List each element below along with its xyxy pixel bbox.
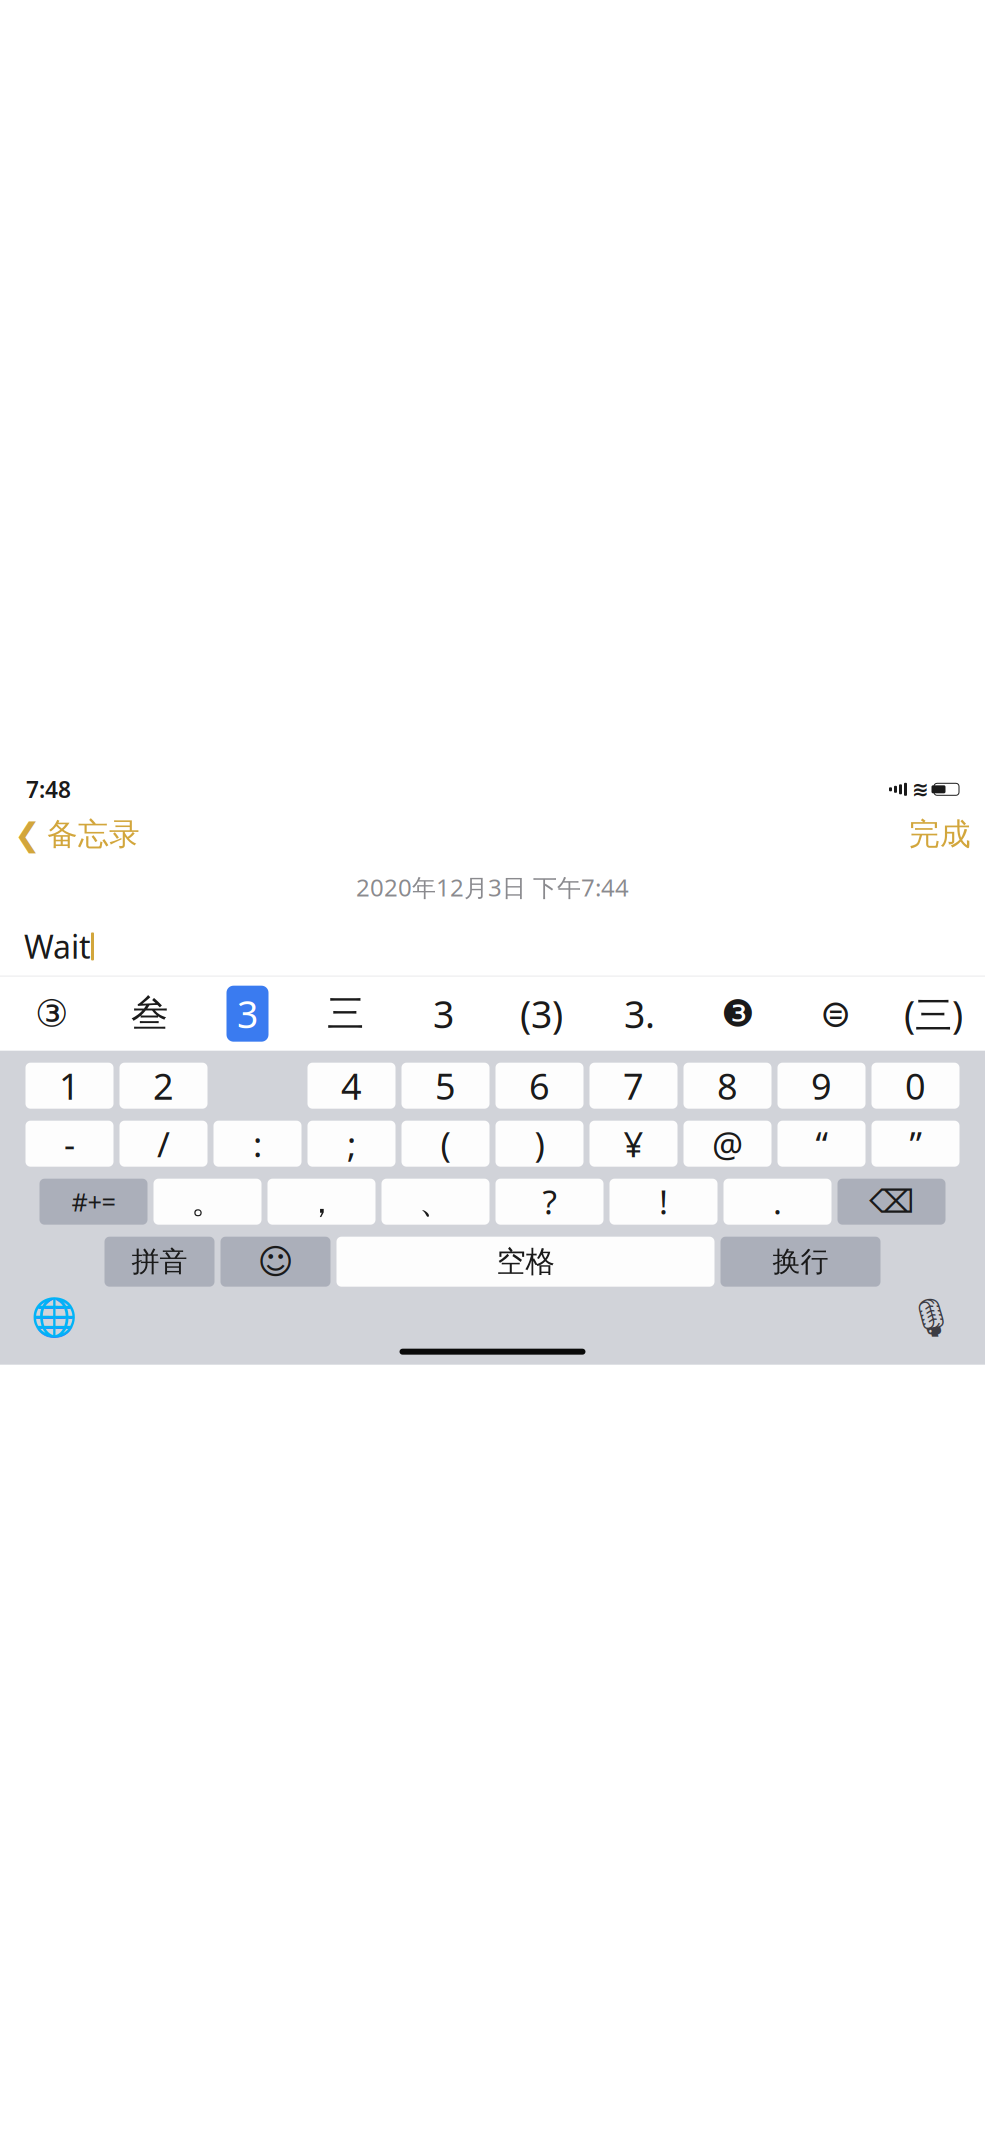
button[interactable]: ?	[495, 1179, 603, 1225]
button[interactable]: 0	[871, 1063, 959, 1109]
button[interactable]: Candidate ③	[2, 977, 100, 1051]
staticText: 🎙	[907, 1296, 954, 1339]
staticText: ≋	[912, 778, 929, 801]
staticText: @	[712, 1121, 743, 1167]
button[interactable]: 。	[153, 1179, 261, 1225]
button[interactable]: “	[777, 1121, 865, 1167]
staticText: :	[253, 1121, 262, 1167]
button[interactable]: :	[213, 1121, 301, 1167]
staticText: -	[64, 1121, 75, 1167]
staticText: 拼音	[131, 1244, 187, 1279]
button[interactable]: /	[119, 1121, 207, 1167]
staticText: )	[534, 1121, 544, 1167]
button[interactable]: More symbols	[39, 1179, 147, 1225]
staticText: 2020年12月3日 下午7:44	[356, 871, 629, 903]
button[interactable]: 6	[495, 1063, 583, 1109]
staticText: 2	[153, 1062, 174, 1110]
staticText: 8	[717, 1062, 738, 1110]
staticText: (3)	[520, 989, 563, 1038]
button[interactable]: Emoji	[220, 1237, 330, 1287]
staticText: 3	[433, 989, 454, 1038]
button[interactable]: @	[683, 1121, 771, 1167]
button[interactable]: .	[723, 1179, 831, 1225]
staticText: 3.	[624, 989, 655, 1038]
staticText: ❮	[14, 816, 41, 852]
staticText: “	[815, 1121, 827, 1167]
staticText: 1	[59, 1062, 80, 1110]
staticText: 7:48	[26, 774, 71, 804]
staticText: 。	[191, 1181, 224, 1222]
button[interactable]: Candidate (3)	[492, 977, 590, 1051]
staticText: ☺	[257, 1242, 293, 1281]
button[interactable]: Switch keyboard	[24, 1293, 84, 1343]
staticText: 🌐	[31, 1296, 77, 1339]
button[interactable]: 完成	[909, 809, 971, 859]
button[interactable]: ，	[267, 1179, 375, 1225]
button[interactable]: Return	[720, 1237, 880, 1287]
staticText: 4	[341, 1062, 362, 1110]
staticText: 9	[811, 1062, 832, 1110]
button[interactable]: )	[495, 1121, 583, 1167]
staticText: /	[157, 1121, 170, 1167]
button[interactable]: 1	[25, 1063, 113, 1109]
staticText: 3	[237, 989, 258, 1038]
staticText: 备忘录	[47, 815, 140, 853]
button[interactable]: 2	[119, 1063, 207, 1109]
staticText: ;	[347, 1121, 356, 1167]
staticText: ”	[909, 1121, 921, 1167]
button[interactable]: !	[609, 1179, 717, 1225]
button[interactable]: 、	[381, 1179, 489, 1225]
button[interactable]: (	[401, 1121, 489, 1167]
button[interactable]: ;	[307, 1121, 395, 1167]
staticText: ❸	[721, 992, 754, 1035]
button[interactable]: Delete	[837, 1179, 945, 1225]
button[interactable]: 7	[589, 1063, 677, 1109]
button[interactable]: Candidate 3	[394, 977, 492, 1051]
button[interactable]: 5	[401, 1063, 489, 1109]
button[interactable]: ”	[871, 1121, 959, 1167]
button[interactable]: Candidate 三	[296, 977, 394, 1051]
button[interactable]: Pinyin keyboard	[104, 1237, 214, 1287]
staticText: 叁	[131, 991, 168, 1037]
button[interactable]: Candidate 3.	[590, 977, 688, 1051]
button[interactable]: Candidate ❸	[688, 977, 786, 1051]
staticText: 7	[623, 1062, 644, 1110]
staticText: ⊜	[820, 992, 851, 1035]
staticText: #+=	[71, 1185, 115, 1218]
staticText: 三	[327, 991, 364, 1037]
button[interactable]: Candidate (三)	[884, 977, 982, 1051]
button[interactable]: Dictation	[901, 1293, 961, 1343]
staticText: ，	[305, 1181, 338, 1222]
staticText: 空格	[496, 1244, 554, 1280]
staticText: Wait	[24, 925, 91, 968]
staticText: 完成	[909, 815, 971, 853]
staticText: 换行	[772, 1244, 828, 1279]
staticText: (	[440, 1121, 450, 1167]
staticText: 5	[435, 1062, 456, 1110]
staticText: ¥	[623, 1121, 643, 1167]
staticText: ③	[35, 992, 68, 1035]
button[interactable]: Candidate 3	[198, 977, 296, 1051]
staticText: 0	[905, 1062, 926, 1110]
staticText: .	[773, 1180, 782, 1224]
button[interactable]: 9	[777, 1063, 865, 1109]
button[interactable]: ¥	[589, 1121, 677, 1167]
button[interactable]: Space	[336, 1237, 714, 1287]
staticText: ⌫	[869, 1183, 914, 1220]
staticText: ?	[542, 1180, 556, 1224]
staticText: (三)	[904, 989, 963, 1038]
button[interactable]: 8	[683, 1063, 771, 1109]
button[interactable]: ❮	[14, 809, 140, 859]
button[interactable]: Candidate ⊜	[786, 977, 884, 1051]
staticText: 、	[419, 1181, 452, 1222]
button[interactable]: -	[25, 1121, 113, 1167]
button[interactable]: Candidate 叁	[100, 977, 198, 1051]
button[interactable]: 4	[307, 1063, 395, 1109]
staticText: !	[659, 1180, 668, 1224]
staticText: 6	[529, 1062, 550, 1110]
